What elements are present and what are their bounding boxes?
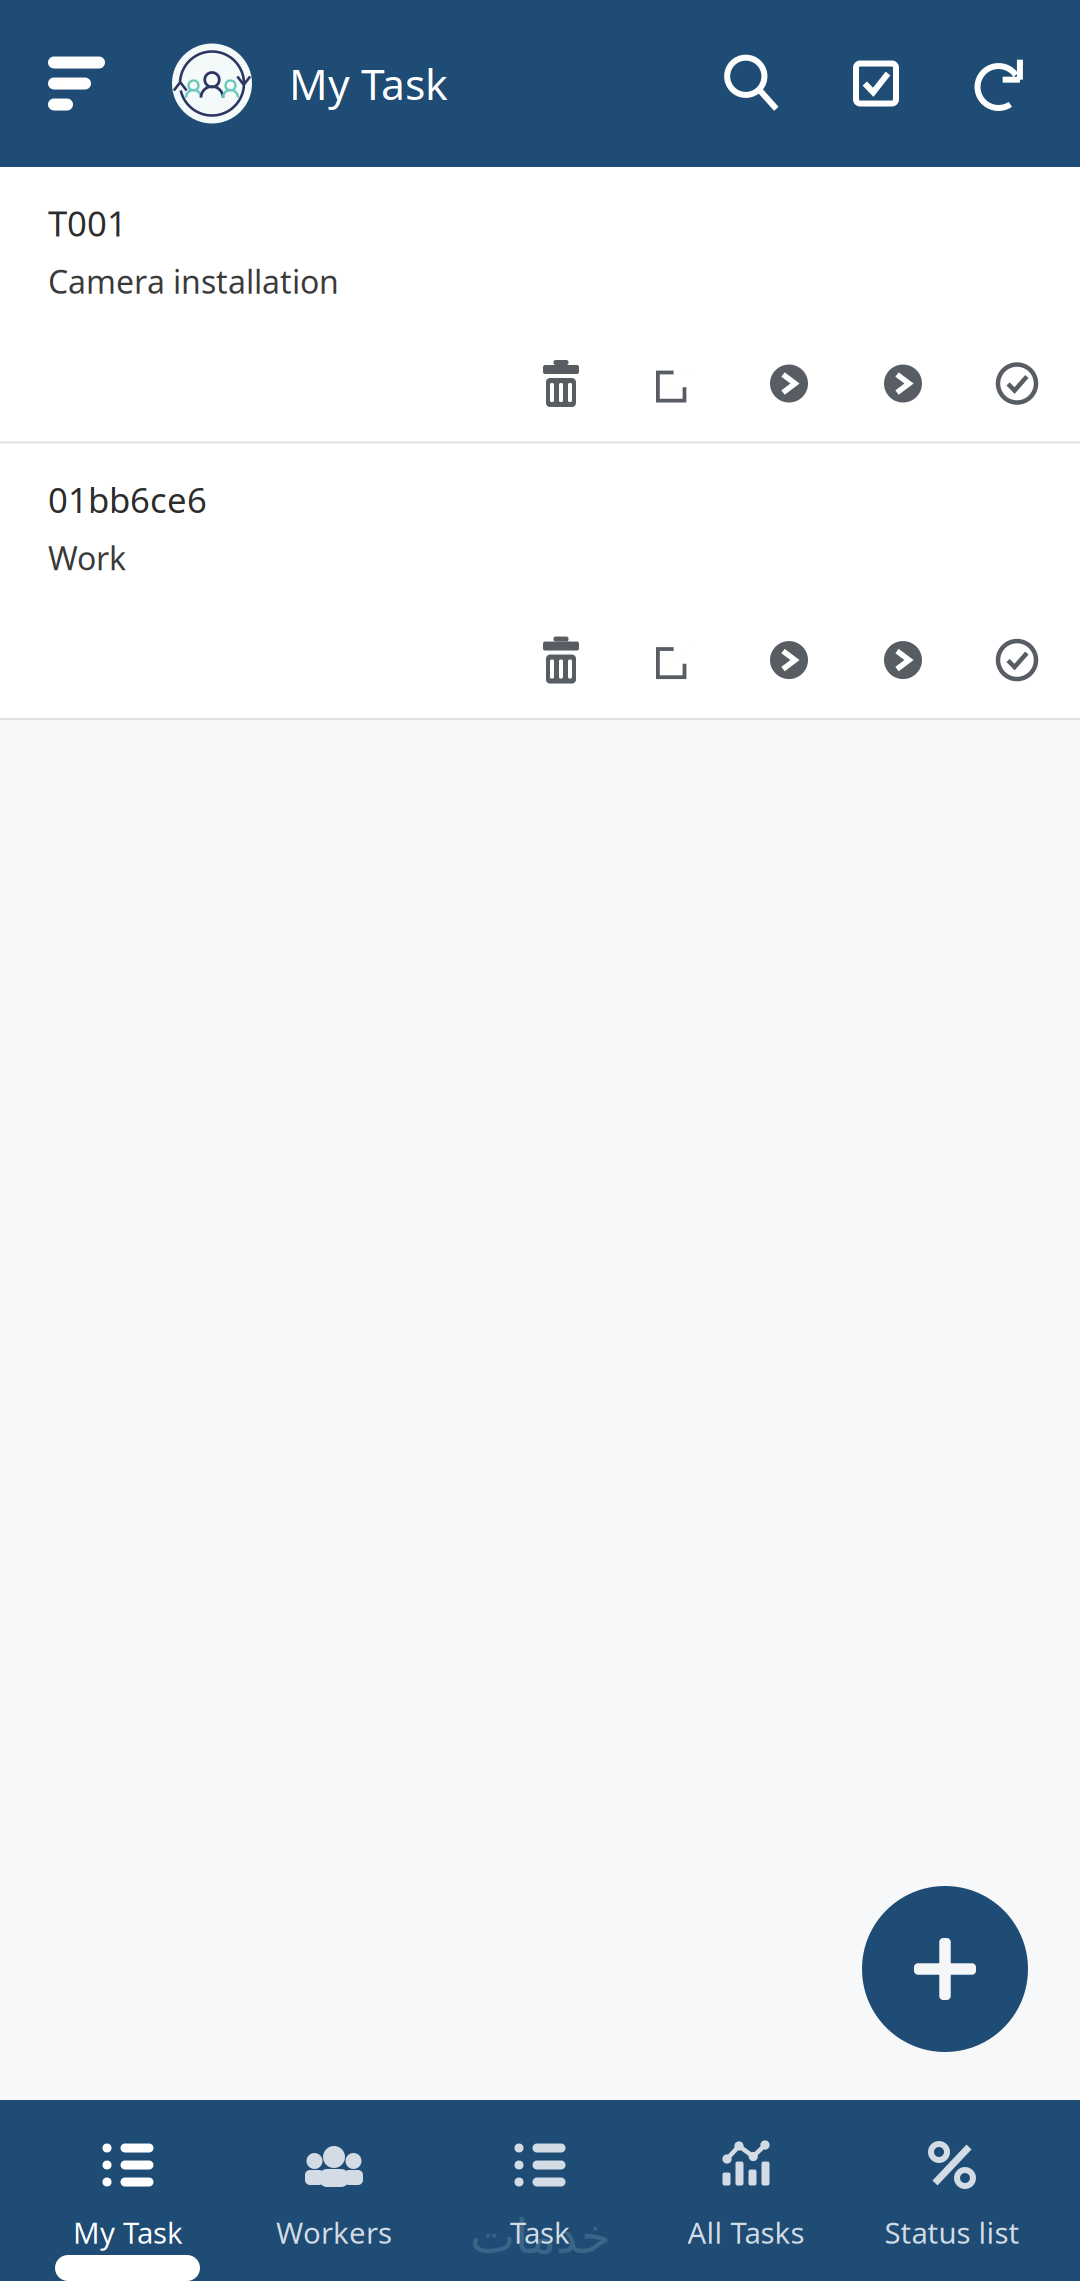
button[interactable]: Select tasks [814, 0, 938, 167]
button[interactable]: All Tasks [643, 2100, 849, 2281]
staticText: Workers [276, 2213, 392, 2252]
button[interactable]: My Task [25, 2100, 231, 2281]
staticText: Status list [884, 2213, 1019, 2252]
staticText: Camera installation [48, 260, 339, 302]
button[interactable]: Menu [0, 0, 105, 167]
button[interactable]: Search [690, 0, 814, 167]
staticText: خدمات [469, 2209, 610, 2264]
staticText: 01bb6ce6 [48, 476, 207, 522]
button[interactable]: Complete [995, 359, 1039, 407]
staticText: My Task [73, 2213, 183, 2252]
button[interactable]: Edit [653, 636, 697, 684]
button[interactable]: Edit [653, 359, 697, 407]
button[interactable]: Move forward [767, 359, 811, 407]
button[interactable]: Next step [881, 636, 925, 684]
button[interactable]: Move forward [767, 636, 811, 684]
button[interactable]: Next step [881, 359, 925, 407]
staticText: T001 [48, 200, 127, 246]
button[interactable]: Add task [850, 1874, 1040, 2064]
staticText: Work [48, 537, 126, 579]
staticText: My Task [289, 55, 448, 112]
button[interactable]: Refresh [938, 0, 1062, 167]
button[interactable]: Task [437, 2100, 643, 2281]
staticText: All Tasks [687, 2213, 804, 2252]
button[interactable]: Workers [231, 2100, 437, 2281]
staticText: Task [510, 2213, 570, 2252]
button[interactable]: Delete [539, 636, 583, 684]
button[interactable]: Complete [995, 636, 1039, 684]
button[interactable]: Status list [849, 2100, 1055, 2281]
button[interactable]: Delete [539, 359, 583, 407]
